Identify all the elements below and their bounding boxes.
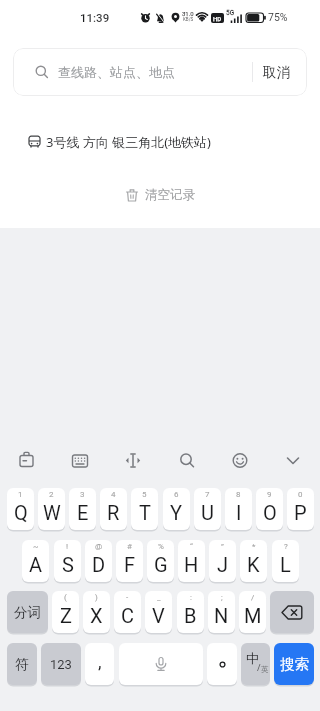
staticText: 分词 [14, 604, 41, 621]
button[interactable] [207, 643, 237, 685]
button[interactable]: ~ [22, 540, 49, 582]
staticText: 4 [111, 490, 116, 499]
staticText: ” [221, 542, 224, 551]
button[interactable]: , [85, 643, 114, 685]
staticText: J [217, 553, 229, 576]
button[interactable]: : [177, 591, 204, 633]
button[interactable]: 8 [225, 488, 252, 530]
staticText: C [121, 604, 135, 627]
staticText: _ [157, 593, 161, 602]
staticText: ? [284, 542, 288, 551]
button[interactable]: ( [52, 591, 79, 633]
button[interactable]: @ [85, 540, 112, 582]
staticText: U [201, 501, 214, 524]
button[interactable]: ! [54, 540, 81, 582]
staticText: 搜索 [280, 655, 309, 673]
button[interactable]: ; [208, 591, 235, 633]
button[interactable]: 清空记录 [0, 183, 320, 207]
button[interactable]: _ [145, 591, 172, 633]
button[interactable]: 符 [7, 643, 37, 685]
staticText: P [294, 501, 307, 524]
staticText: : [190, 593, 192, 602]
button[interactable]: 6 [163, 488, 190, 530]
staticText: Q [14, 501, 28, 524]
staticText: F [124, 553, 136, 576]
button[interactable]: 7 [194, 488, 221, 530]
button[interactable]: 取消 [253, 64, 307, 81]
staticText: Y [170, 501, 183, 524]
staticText: ; [221, 593, 223, 602]
button[interactable]: 5 [131, 488, 158, 530]
button[interactable]: # [116, 540, 143, 582]
staticText: T [139, 501, 151, 524]
staticText: 7 [205, 490, 210, 499]
staticText: 取消 [263, 64, 290, 81]
button[interactable]: 1 [7, 488, 34, 530]
staticText: ~ [33, 542, 39, 551]
button[interactable] [172, 446, 202, 476]
staticText: K [247, 553, 260, 576]
staticText: Z [60, 604, 72, 627]
button[interactable] [225, 446, 255, 476]
button[interactable] [12, 446, 42, 476]
staticText: 2 [49, 490, 54, 499]
button[interactable]: ) [83, 591, 110, 633]
staticText: 3 [80, 490, 85, 499]
staticText: L [280, 553, 291, 576]
staticText: 11:39 [80, 11, 110, 24]
button[interactable]: 123 [41, 643, 81, 685]
button[interactable] [65, 446, 95, 476]
staticText: ! [66, 542, 69, 551]
staticText: 0 [298, 490, 303, 499]
button[interactable]: 搜索 [274, 643, 314, 685]
staticText: R [107, 501, 120, 524]
button[interactable]: % [147, 540, 174, 582]
button[interactable]: / [239, 591, 266, 633]
button[interactable]: 中 [241, 643, 270, 685]
staticText: , [98, 651, 102, 672]
staticText: 6 [174, 490, 179, 499]
button[interactable]: - [114, 591, 141, 633]
button[interactable]: 0 [287, 488, 314, 530]
staticText: @ [95, 542, 103, 551]
button[interactable] [119, 643, 203, 685]
staticText: 9 [267, 490, 272, 499]
button[interactable]: ? [272, 540, 299, 582]
staticText: 8 [236, 490, 241, 499]
staticText: / [257, 661, 261, 674]
staticText: ( [64, 593, 67, 602]
button[interactable]: 分词 [7, 591, 48, 633]
button[interactable]: ” [209, 540, 236, 582]
button[interactable]: 9 [256, 488, 283, 530]
staticText: 清空记录 [145, 187, 195, 203]
staticText: % [158, 542, 164, 551]
staticText: - [126, 593, 129, 602]
staticText: 查线路、站点、地点 [58, 64, 175, 80]
button[interactable] [270, 591, 314, 633]
staticText: S [62, 553, 74, 576]
button[interactable]: 3号线 方向 银三角北(地铁站) [0, 128, 320, 155]
button[interactable]: 3 [69, 488, 96, 530]
button[interactable] [278, 446, 308, 476]
button[interactable]: 4 [100, 488, 127, 530]
staticText: E [77, 501, 89, 524]
staticText: / [251, 593, 255, 602]
staticText: ) [95, 593, 98, 602]
staticText: D [92, 553, 106, 576]
staticText: * [252, 542, 256, 551]
button[interactable]: 查线路、站点、地点 [13, 48, 307, 96]
staticText: N [214, 604, 229, 627]
staticText: 符 [15, 656, 29, 673]
staticText: 123 [50, 657, 72, 672]
staticText: W [43, 501, 61, 524]
button[interactable]: 2 [38, 488, 65, 530]
staticText: 75% [268, 11, 288, 23]
staticText: 5 [142, 490, 147, 499]
staticText: 5G [226, 9, 235, 17]
button[interactable]: “ [178, 540, 205, 582]
staticText: 3号线 方向 银三角北(地铁站) [46, 133, 211, 151]
button[interactable] [118, 446, 148, 476]
button[interactable]: * [240, 540, 267, 582]
staticText: H [184, 553, 199, 576]
staticText: “ [190, 542, 193, 551]
